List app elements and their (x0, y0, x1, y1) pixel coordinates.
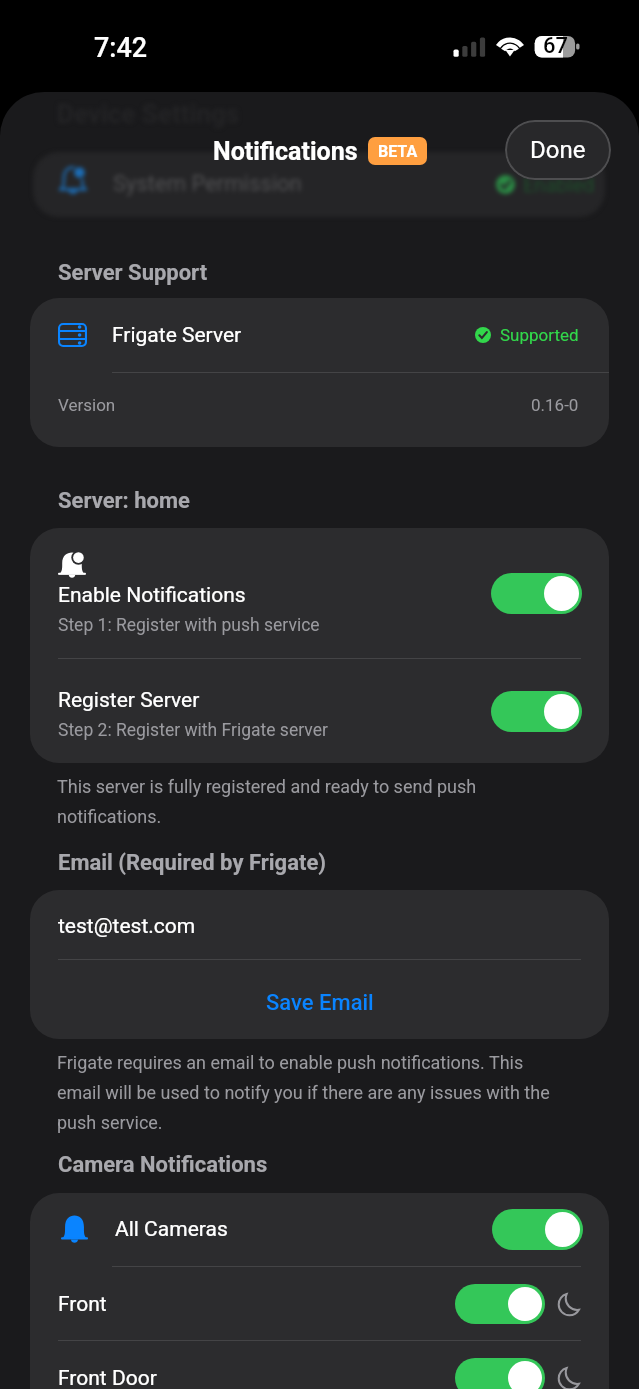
button[interactable]: Save Email (30, 963, 609, 1039)
button[interactable]: Toggle (455, 1358, 545, 1389)
staticText: System Permission (113, 171, 302, 197)
button[interactable]: Front Door (30, 1341, 609, 1389)
staticText: test@test.com (58, 914, 196, 939)
staticText: Step 2: Register with Frigate server (58, 720, 328, 741)
staticText: Front (58, 1292, 107, 1317)
staticText: Camera Notifications (58, 1152, 268, 1178)
button[interactable]: Enable Notifications (30, 528, 609, 658)
staticText: Enabled (523, 173, 595, 196)
staticText: Frigate requires an email to enable push… (57, 1052, 562, 1133)
staticText: Email (Required by Frigate) (58, 850, 326, 876)
button[interactable]: Front (30, 1267, 609, 1341)
staticText: Frigate Server (112, 323, 242, 348)
staticText: Version (58, 395, 116, 415)
button[interactable]: All Cameras (30, 1193, 609, 1266)
staticText: All Cameras (115, 1217, 228, 1242)
staticText: 67 (543, 33, 569, 59)
staticText: Step 1: Register with push service (58, 615, 320, 636)
button[interactable]: Toggle (491, 573, 582, 614)
staticText: Supported (500, 325, 579, 345)
staticText: Enable Notifications (58, 583, 246, 608)
staticText: Save Email (266, 990, 374, 1016)
staticText: 7:42 (94, 32, 148, 64)
button[interactable]: Toggle (455, 1284, 545, 1324)
button[interactable]: Done (505, 120, 611, 180)
staticText: Server: home (58, 488, 190, 514)
staticText: BETA (378, 142, 418, 161)
button[interactable]: Register Server (30, 659, 609, 763)
staticText: Done (530, 136, 586, 164)
staticText: Register Server (58, 688, 200, 713)
button[interactable]: Toggle (491, 691, 582, 732)
staticText: This server is fully registered and read… (57, 776, 517, 827)
button[interactable]: Toggle (492, 1209, 583, 1250)
staticText: Front Door (58, 1366, 157, 1389)
staticText: Notifications (213, 137, 358, 166)
button[interactable]: Frigate Server (30, 298, 609, 372)
staticText: Server Support (58, 260, 208, 286)
staticText: 0.16-0 (531, 395, 579, 415)
